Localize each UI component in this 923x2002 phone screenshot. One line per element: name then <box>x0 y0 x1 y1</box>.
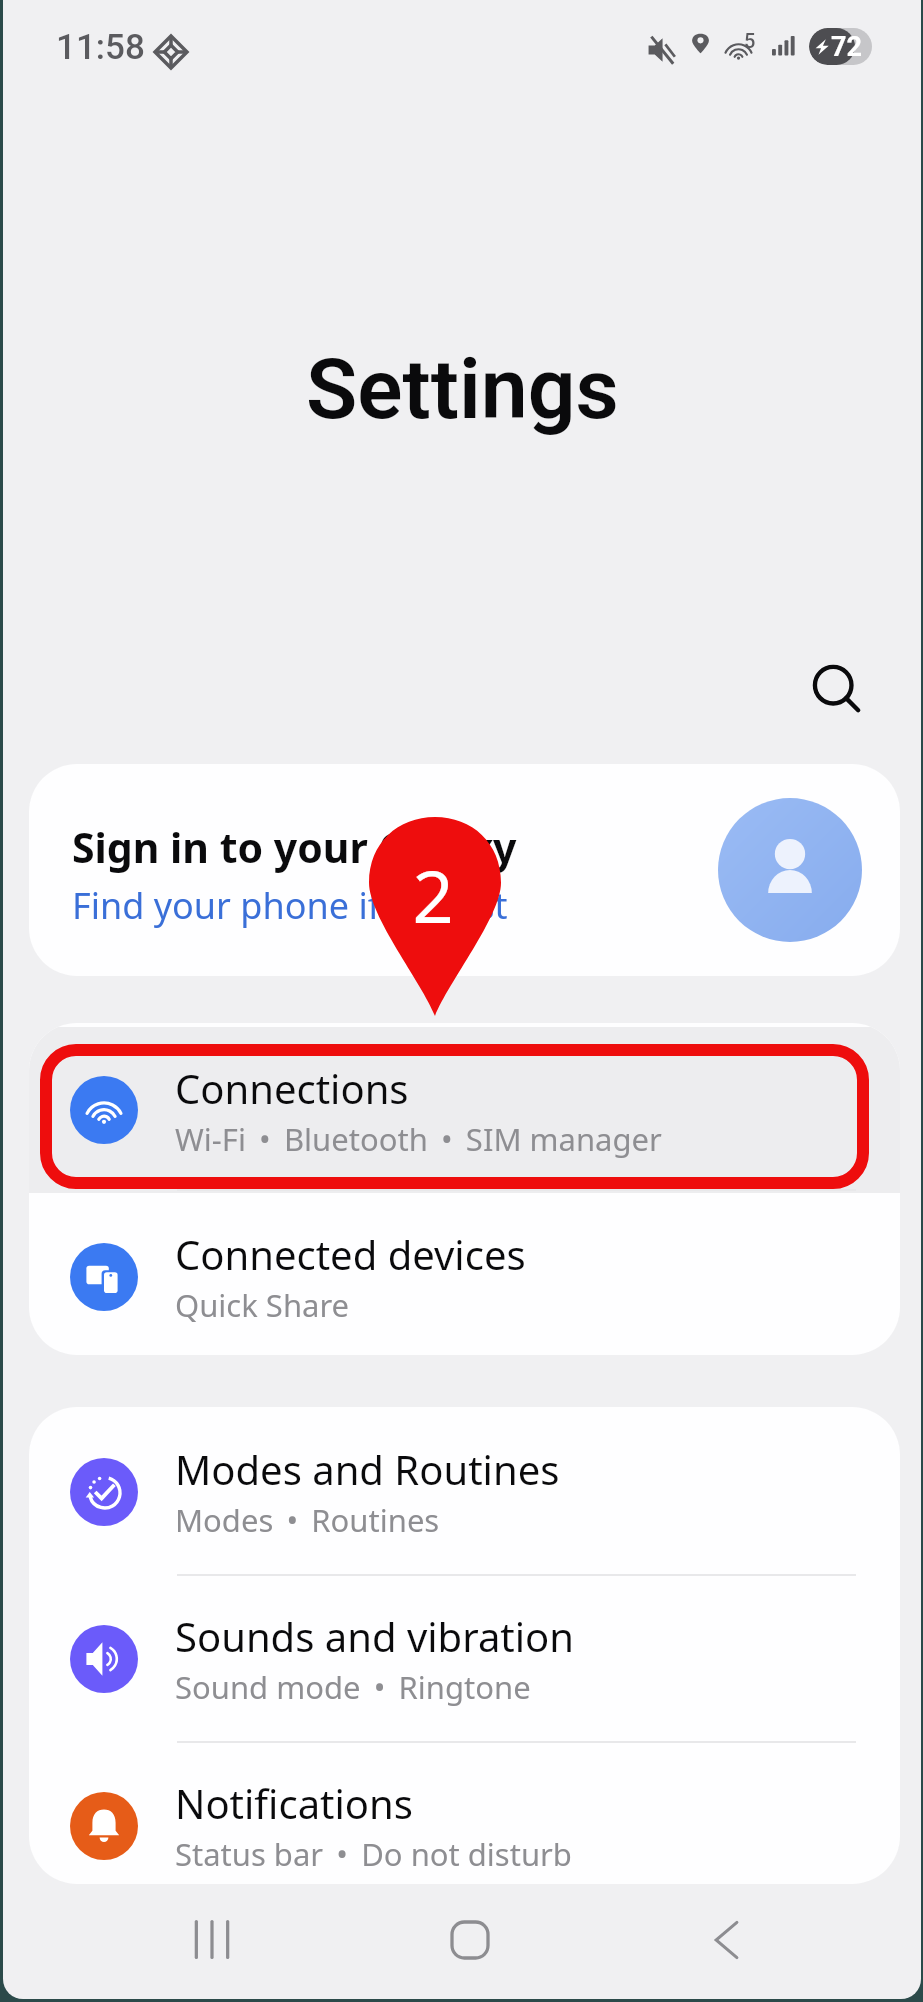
staticText: 2 <box>412 846 454 926</box>
staticText: Status bar • Do not disturb <box>175 1833 572 1875</box>
staticText: Modes • Routines <box>175 1499 440 1541</box>
staticText: Quick Share <box>175 1284 350 1326</box>
staticText: Find your phone if it's lost <box>72 881 508 930</box>
staticText: Modes and Routines <box>175 1442 560 1496</box>
button[interactable]: Back <box>646 1884 806 1995</box>
button[interactable]: Connections <box>29 1027 900 1193</box>
button[interactable]: Notifications <box>29 1742 900 1884</box>
staticText: 5 <box>744 29 756 52</box>
button[interactable]: Modes and Routines <box>29 1408 900 1575</box>
button[interactable]: Search <box>794 646 884 736</box>
staticText: Connected devices <box>175 1227 526 1281</box>
staticText: Sign in to your Galaxy <box>72 819 517 875</box>
button[interactable]: Sounds and vibration <box>29 1575 900 1742</box>
staticText: Notifications <box>175 1776 413 1830</box>
staticText: Sounds and vibration <box>175 1609 574 1663</box>
staticText: Settings <box>306 340 619 438</box>
staticText: Sound mode • Ringtone <box>175 1666 531 1708</box>
button[interactable]: Recent apps <box>132 1884 292 1995</box>
staticText: 72 <box>831 31 862 63</box>
staticText: Connections <box>175 1061 409 1115</box>
staticText: Wi-Fi • Bluetooth • SIM manager <box>175 1118 662 1160</box>
button[interactable]: Connected devices <box>29 1194 900 1355</box>
staticText: 11:58 <box>56 27 145 68</box>
button[interactable]: Sign in to your Galaxy <box>29 764 900 976</box>
button[interactable]: Home <box>390 1884 550 1995</box>
